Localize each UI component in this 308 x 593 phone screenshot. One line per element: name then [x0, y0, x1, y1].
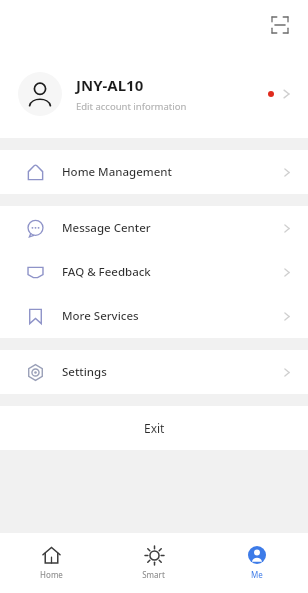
button[interactable]: Smart [102, 533, 205, 593]
button[interactable]: Home [0, 533, 102, 593]
staticText: Exit [144, 420, 165, 436]
button[interactable]: Home Management [0, 150, 308, 194]
staticText: Settings [62, 364, 284, 380]
button[interactable]: More Services [0, 294, 308, 338]
button[interactable]: Message Center [0, 206, 308, 250]
button[interactable]: JNY-AL10 [0, 50, 308, 138]
staticText: Edit account information [76, 100, 187, 113]
staticText: Message Center [62, 220, 284, 236]
staticText: Home Management [62, 164, 284, 180]
staticText: FAQ & Feedback [62, 264, 284, 280]
button[interactable]: Me [205, 533, 308, 593]
staticText: Smart [142, 569, 165, 580]
button[interactable]: FAQ & Feedback [0, 250, 308, 294]
staticText: More Services [62, 308, 284, 324]
button[interactable]: Settings [0, 350, 308, 394]
button[interactable]: Exit [0, 406, 308, 450]
staticText: JNY-AL10 [76, 75, 144, 95]
button[interactable]: Scan [264, 9, 296, 41]
staticText: Home [40, 569, 63, 580]
staticText: Me [251, 569, 263, 580]
